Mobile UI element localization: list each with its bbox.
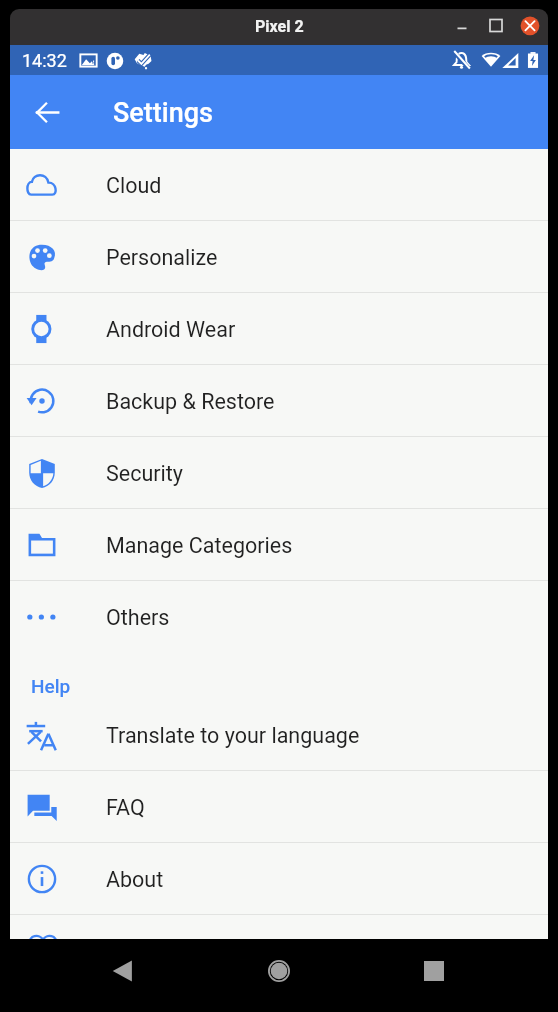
button[interactable]: Backup & Restore [10,365,548,436]
button[interactable]: Personalize [10,221,548,292]
staticText: Cloud [106,173,162,198]
button[interactable]: Android Wear [10,293,548,364]
button[interactable]: Maximize [479,9,513,43]
button[interactable]: Home [255,947,303,995]
button[interactable]: About [10,843,548,914]
button[interactable]: Manage Categories [10,509,548,580]
staticText: Android Wear [106,317,236,342]
staticText: Backup & Restore [106,389,275,414]
button[interactable]: Cloud [10,149,548,220]
button[interactable]: Close [512,9,548,45]
button[interactable]: Back [23,88,71,136]
button[interactable]: Recents [410,947,458,995]
staticText: FAQ [106,795,145,820]
staticText: Others [106,605,170,630]
button[interactable]: FAQ [10,771,548,842]
staticText: About [106,867,164,892]
staticText: Settings [113,97,213,129]
button[interactable]: Others [10,581,548,652]
button[interactable]: Minimize [445,11,479,45]
staticText: Translate to your language [106,723,360,748]
staticText: Help [31,675,71,697]
button[interactable]: Rate Us [10,915,548,939]
button[interactable]: Translate to your language [10,699,548,770]
staticText: 14:32 [22,50,67,71]
button[interactable]: Security [10,437,548,508]
staticText: Personalize [106,245,218,270]
staticText: Security [106,461,183,486]
staticText: Manage Categories [106,533,293,558]
button[interactable]: Back [98,947,146,995]
staticText: Pixel 2 [255,17,304,36]
